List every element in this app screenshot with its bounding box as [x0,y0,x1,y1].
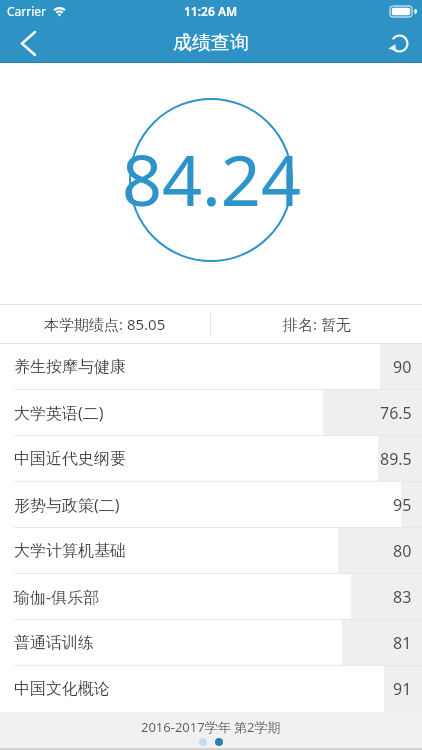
staticText: 本学期绩点: 85.05 [44,314,166,334]
staticText: 81 [393,632,412,654]
staticText: 中国文化概论 [14,679,110,699]
button[interactable]: 2016-2017学年 第2学期 [0,712,422,750]
staticText: 83 [393,586,412,608]
staticText: 80 [393,540,412,562]
staticText: 90 [393,356,412,378]
staticText: 91 [393,678,412,700]
staticText: 2016-2017学年 第2学期 [141,718,281,736]
button[interactable]: 瑜伽-俱乐部 [0,574,422,620]
staticText: 84.24 [122,131,301,226]
staticText: 11:26 AM [184,3,238,19]
staticText: 养生按摩与健康 [14,357,126,377]
button[interactable]: 本学期绩点: 85.05 [0,305,210,343]
staticText: 普通话训练 [14,633,94,653]
button[interactable]: 普通话训练 [0,620,422,666]
button[interactable]: 大学英语(二) [0,390,422,436]
staticText: 89.5 [380,448,412,470]
button[interactable]: 中国文化概论 [0,666,422,712]
staticText: 76.5 [380,402,412,424]
button[interactable]: 养生按摩与健康 [0,344,422,390]
button[interactable]: 排名: 暂无 [211,305,422,343]
button[interactable] [382,26,416,60]
staticText: 中国近代史纲要 [14,449,126,469]
staticText: 瑜伽-俱乐部 [14,586,100,608]
staticText: 95 [393,494,412,516]
button[interactable] [10,25,46,61]
staticText: 排名: 暂无 [283,314,351,334]
staticText: 大学英语(二) [14,402,104,424]
staticText: 成绩查询 [173,31,249,55]
staticText: Carrier [7,3,47,19]
button[interactable]: 中国近代史纲要 [0,436,422,482]
staticText: 大学计算机基础 [14,541,126,561]
button[interactable]: 大学计算机基础 [0,528,422,574]
staticText: 形势与政策(二) [14,494,120,516]
button[interactable]: 形势与政策(二) [0,482,422,528]
